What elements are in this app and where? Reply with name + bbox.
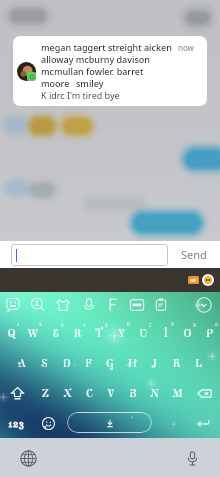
button[interactable]: C [78,378,100,408]
button[interactable] [11,244,168,266]
staticText: X [63,386,72,400]
button[interactable]: U [132,318,154,348]
staticText: moore [41,77,70,89]
button[interactable]: E [44,318,66,348]
button[interactable]: Clipboard [152,296,170,314]
button[interactable]: H [121,348,143,378]
button[interactable]: W [22,318,44,348]
button[interactable]: Backspace [188,378,220,408]
staticText: U [139,326,147,340]
button[interactable]: megan taggert streight aicken [13,36,207,106]
staticText: Q [7,326,16,340]
button[interactable]: Voice input [173,439,211,477]
button[interactable]: K [165,348,187,378]
staticText: GIF [190,278,197,283]
button[interactable]: D [55,348,77,378]
staticText: J [152,356,157,370]
staticText: smiley [76,77,104,89]
staticText: Z [42,386,49,400]
staticText: K idrc I'm tired bye [41,89,120,101]
button[interactable]: R [66,318,88,348]
button[interactable]: Emoji [202,274,214,286]
staticText: Send [181,247,207,262]
staticText: S [41,356,48,370]
staticText: 5 [105,322,108,328]
button[interactable]: Send [168,241,220,268]
staticText: N [151,386,159,400]
button[interactable]: B [122,378,144,408]
button[interactable]: Fonts [104,296,122,314]
staticText: T [96,326,102,340]
button[interactable]: Space [67,412,152,433]
staticText: R [73,326,82,340]
staticText: G [106,356,114,370]
button[interactable]: Change language [9,439,47,477]
button[interactable]: O [176,318,198,348]
button[interactable]: 123 [0,408,32,438]
button[interactable]: V [100,378,122,408]
button[interactable]: P [198,318,220,348]
staticText: 8 [171,322,174,328]
button[interactable]: Y [110,318,132,348]
button[interactable]: GIF [188,276,199,284]
staticText: 123 [8,417,25,430]
staticText: V [108,386,114,400]
button[interactable]: Enter [186,408,220,438]
staticText: 9 [193,322,196,328]
button[interactable]: X [56,378,78,408]
staticText: K [172,356,181,370]
button[interactable]: Emoji [32,408,64,438]
button[interactable]: F [77,348,99,378]
button[interactable]: Art [128,296,146,314]
staticText: 2 [39,322,42,328]
staticText: D [62,356,71,370]
staticText: A [18,356,26,370]
staticText: 0 [215,322,218,328]
staticText: 7 [149,322,152,328]
button[interactable]: G [99,348,121,378]
staticText: E [52,326,59,340]
staticText: 4 [83,322,86,328]
button[interactable]: J [143,348,165,378]
staticText: F [85,356,92,370]
staticText: I [163,326,168,340]
staticText: H [128,356,137,370]
button[interactable]: Themes [54,296,72,314]
staticText: 1 [17,322,20,328]
staticText: O [183,326,192,340]
button[interactable]: M [166,378,188,408]
staticText: 3 [61,322,64,328]
staticText: B [129,386,137,400]
button[interactable]: Q [0,318,22,348]
staticText: megan taggert streight aicken [41,41,172,53]
staticText: 6 [127,322,130,328]
button[interactable]: S [33,348,55,378]
button[interactable]: L [187,348,209,378]
button[interactable]: T [88,318,110,348]
staticText: Y [118,326,125,340]
button[interactable]: I [154,318,176,348]
button[interactable]: Collapse [195,296,213,314]
staticText: L [195,356,202,370]
button[interactable]: N [144,378,166,408]
button[interactable]: Stickers [4,296,22,314]
staticText: now [178,42,194,53]
staticText: C [86,386,93,400]
staticText: mcmullan fowler. barret [41,65,144,77]
button[interactable]: Voice [80,296,98,314]
button[interactable]: Z [34,378,56,408]
staticText: P [206,326,213,340]
button[interactable]: Search stickers [29,296,47,314]
staticText: W [28,326,38,340]
button[interactable]: A [11,348,33,378]
staticText: alloway mcburny davison [41,53,150,65]
button[interactable]: Shift [0,378,34,408]
staticText: M [172,386,183,400]
